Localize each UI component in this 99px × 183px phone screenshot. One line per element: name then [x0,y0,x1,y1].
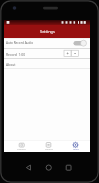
staticText: More [73,147,79,150]
staticText: Auto Record Audio [6,41,34,45]
staticText: About [6,62,16,66]
button[interactable] [4,140,33,152]
staticText: Camera [17,147,26,150]
button[interactable] [33,140,62,152]
button[interactable]: Auto Record Audio [4,38,90,48]
button[interactable] [61,140,90,152]
staticText: Gallery [45,147,53,150]
button[interactable]: Record 1:00 [4,49,90,59]
staticText: Settings [40,29,55,34]
button[interactable]: About [4,59,90,68]
staticText: Record 1:00 [6,52,26,56]
